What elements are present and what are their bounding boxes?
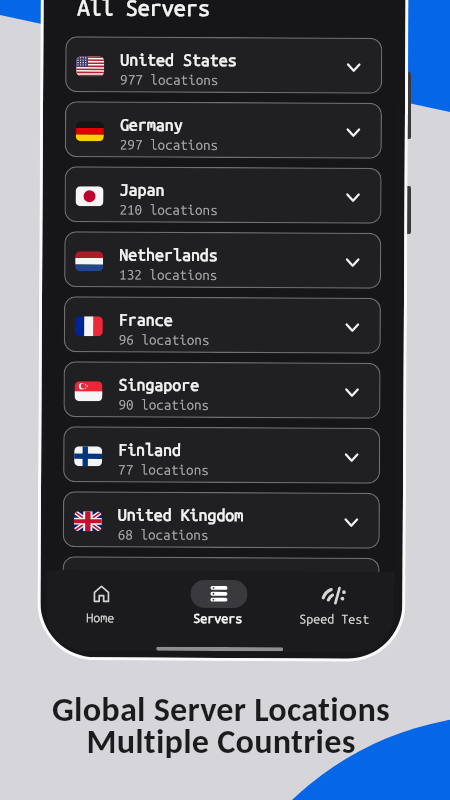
button[interactable]: Home [50,579,150,635]
button[interactable]: France [64,296,381,354]
staticText: 132 locations [119,266,218,282]
button[interactable]: United States [65,36,382,94]
staticText: 977 locations [120,71,219,87]
button[interactable]: Speed Test [284,580,384,636]
staticText: 90 locations [118,396,209,412]
button[interactable]: Germany [65,101,382,159]
staticText: Japan [119,180,165,199]
button[interactable]: Canada [62,556,380,614]
staticText: Singapore [118,375,200,394]
button[interactable]: United Kingdom [63,491,380,549]
staticText: 210 locations [119,201,218,217]
staticText: United Kingdom [118,505,244,524]
button[interactable]: Netherlands [64,231,381,289]
staticText: United States [120,50,237,69]
staticText: Germany [120,115,183,134]
button[interactable]: Japan [64,166,382,224]
staticText: 77 locations [118,461,209,477]
staticText: France [119,310,173,329]
staticText: Global Server Locations [0,688,446,730]
staticText: Servers [193,611,243,625]
staticText: Home [86,610,115,624]
button[interactable]: Finland [63,426,380,484]
button[interactable]: Singapore [63,361,381,419]
staticText: All Servers [77,0,211,20]
staticText: 68 locations [118,526,209,542]
button[interactable]: Servers [168,580,268,635]
staticText: Multiple Countries [0,720,446,762]
staticText: Speed Test [299,611,370,626]
staticText: 297 locations [120,136,219,152]
staticText: 96 locations [119,331,210,347]
staticText: 55 locations [117,591,208,607]
staticText: Netherlands [119,245,218,264]
staticText: Finland [118,440,181,459]
